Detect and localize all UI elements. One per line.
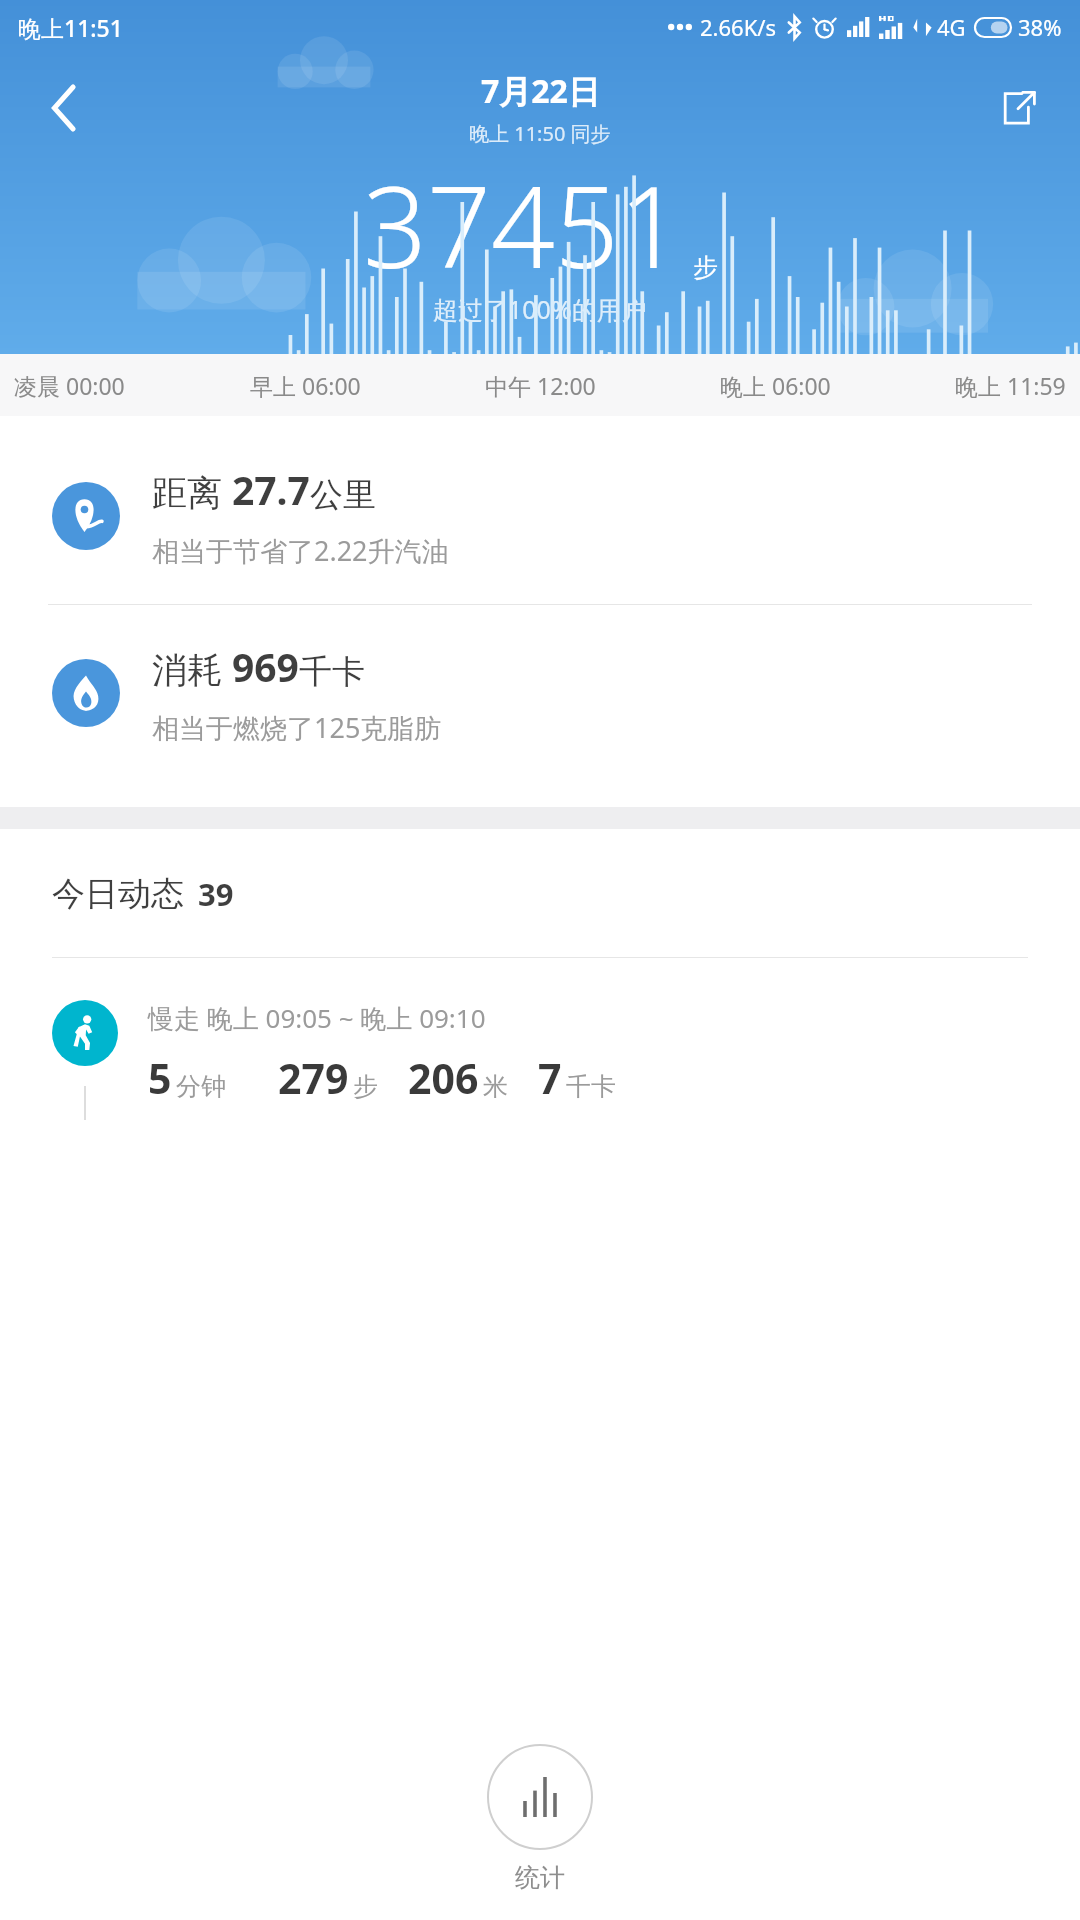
staticText: 千卡 (299, 651, 365, 693)
staticText: 慢走 晚上 09:05 ~ 晚上 09:10 (148, 1000, 486, 1036)
staticText: 晚上11:51 (18, 12, 123, 43)
staticText: 5 (148, 1050, 172, 1106)
staticText: 晚上 11:50 同步 (469, 120, 611, 147)
staticText: 969 (232, 640, 299, 693)
staticText: 7 (538, 1050, 562, 1106)
staticText: 27.7 (232, 463, 310, 516)
staticText: 39 (198, 873, 234, 915)
button[interactable]: 消耗 (0, 605, 1080, 781)
staticText: 38% (1018, 12, 1062, 42)
staticText: 37451 (363, 148, 683, 301)
staticText: 2.66K/s (700, 12, 776, 42)
staticText: 距离 (152, 468, 232, 516)
staticText: 相当于节省了2.22升汽油 (152, 532, 449, 569)
staticText: 千卡 (566, 1071, 616, 1102)
staticText: 206 (408, 1050, 479, 1106)
button[interactable]: 距离 (0, 428, 1080, 604)
button[interactable]: Back (26, 70, 102, 146)
button[interactable]: 慢走 晚上 09:05 ~ 晚上 09:10 (0, 1000, 1080, 1120)
staticText: 超过了100%的用户 (433, 292, 647, 326)
button[interactable]: Share (980, 70, 1056, 146)
staticText: 步 (353, 1071, 378, 1102)
staticText: 统计 (515, 1862, 565, 1893)
staticText: 4G (937, 12, 966, 42)
staticText: 凌晨 00:00 (14, 370, 125, 401)
staticText: 晚上 11:59 (955, 370, 1066, 401)
staticText: 相当于燃烧了125克脂肪 (152, 709, 442, 746)
staticText: 分钟 (176, 1071, 226, 1102)
staticText: 步 (693, 252, 718, 283)
button[interactable]: 统计 (0, 1730, 1080, 1920)
staticText: 7月22日 (481, 69, 600, 113)
staticText: 279 (278, 1050, 349, 1106)
staticText: 早上 06:00 (250, 370, 361, 401)
staticText: 消耗 (152, 645, 232, 693)
staticText: 今日动态 (52, 873, 184, 915)
staticText: 米 (483, 1071, 508, 1102)
staticText: 中午 12:00 (485, 370, 596, 401)
staticText: 公里 (310, 474, 376, 516)
staticText: 晚上 06:00 (720, 370, 831, 401)
